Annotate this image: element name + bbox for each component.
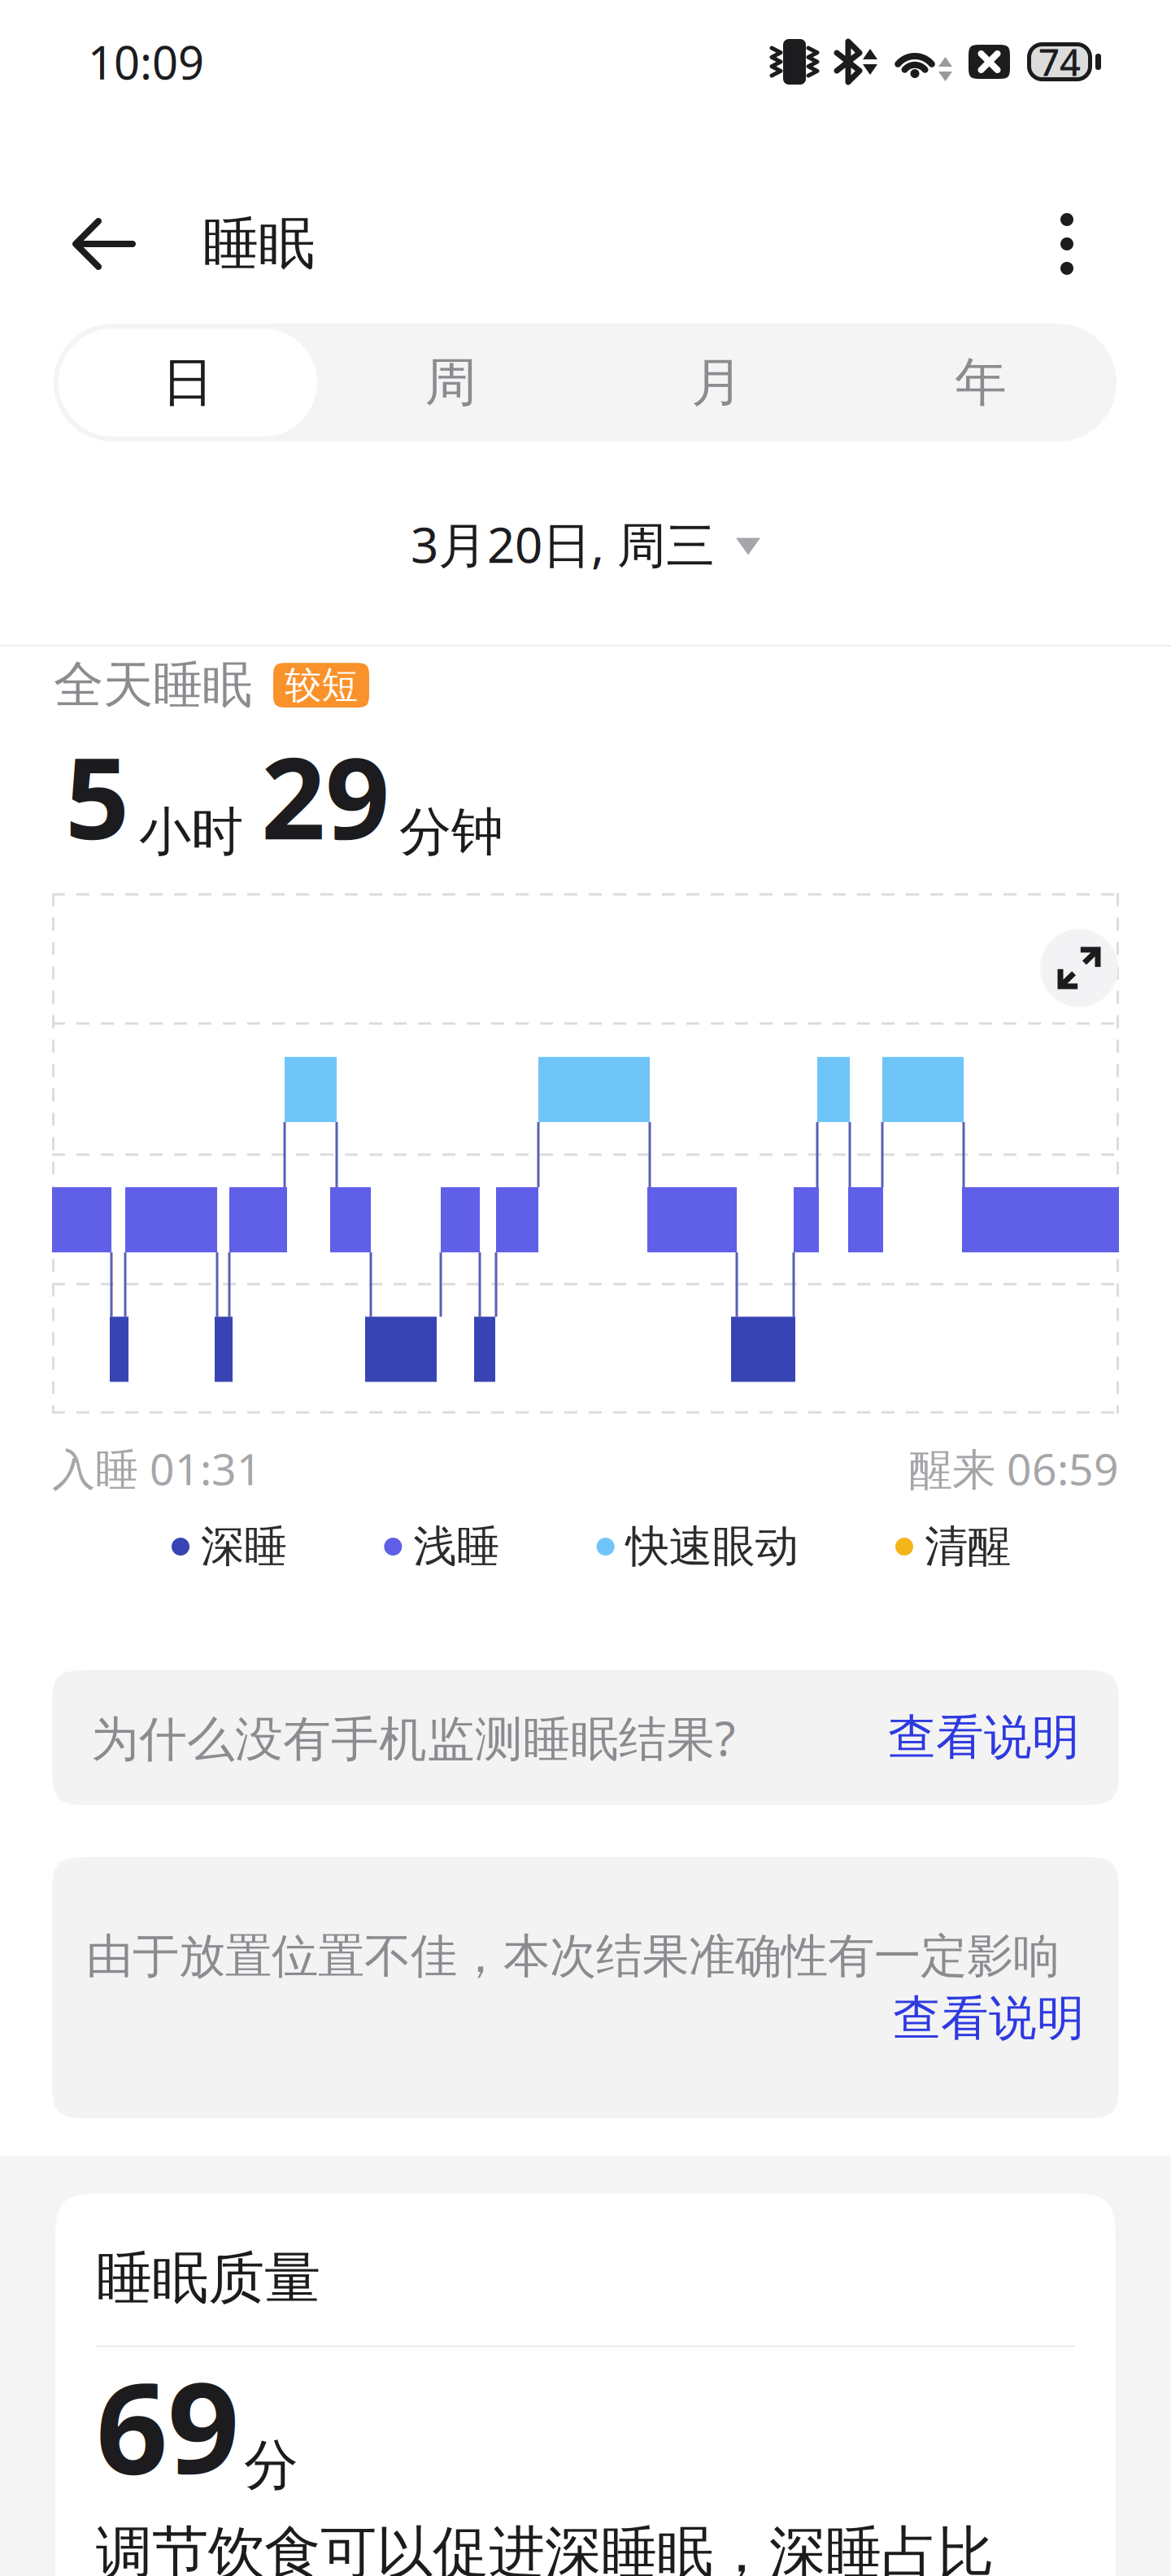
- button[interactable]: 日: [59, 329, 317, 437]
- staticText: 深睡: [201, 1520, 287, 1573]
- staticText: 周: [425, 351, 477, 415]
- staticText: 清醒: [925, 1520, 1011, 1573]
- staticText: 全天睡眠: [54, 655, 252, 716]
- button[interactable]: 月: [585, 329, 850, 437]
- staticText: 5: [65, 721, 129, 870]
- staticText: 小时: [139, 800, 243, 864]
- staticText: 睡眠: [202, 209, 315, 279]
- button[interactable]: 3月20日, 周三: [411, 503, 760, 585]
- staticText: 为什么没有手机监测睡眠结果?: [91, 1706, 735, 1769]
- staticText: 分钟: [399, 800, 503, 864]
- button[interactable]: 周: [317, 329, 585, 437]
- staticText: 查看说明: [893, 1989, 1085, 2048]
- staticText: 由于放置位置不佳，本次结果准确性有一定影响: [86, 1928, 1060, 1985]
- staticText: 3月20日, 周三: [411, 512, 715, 576]
- staticText: 调节饮食可以促进深睡眠，深睡占比: [96, 2518, 994, 2576]
- staticText: 快速眼动: [626, 1520, 798, 1573]
- staticText: 日: [162, 351, 214, 415]
- button[interactable]: 更多: [1026, 179, 1108, 309]
- button[interactable]: 全屏显示: [1040, 929, 1118, 1007]
- staticText: 醒来 06:59: [909, 1440, 1119, 1497]
- staticText: 10:09: [88, 32, 204, 92]
- staticText: 月: [691, 351, 743, 415]
- staticText: 浅睡: [413, 1520, 500, 1573]
- staticText: 29: [261, 721, 390, 870]
- button[interactable]: 由于放置位置不佳，本次结果准确性有一定影响: [52, 1857, 1119, 2118]
- staticText: 年: [955, 351, 1007, 415]
- button[interactable]: 返回: [48, 179, 160, 309]
- staticText: 分: [244, 2432, 298, 2499]
- button[interactable]: 年: [850, 329, 1112, 437]
- staticText: 查看说明: [888, 1708, 1080, 1767]
- button[interactable]: 为什么没有手机监测睡眠结果?: [52, 1670, 1119, 1805]
- staticText: 睡眠质量: [96, 2244, 320, 2313]
- staticText: 入睡 01:31: [52, 1440, 262, 1497]
- staticText: 74: [1038, 37, 1081, 86]
- staticText: 69: [96, 2341, 239, 2508]
- staticText: 较短: [285, 663, 358, 708]
